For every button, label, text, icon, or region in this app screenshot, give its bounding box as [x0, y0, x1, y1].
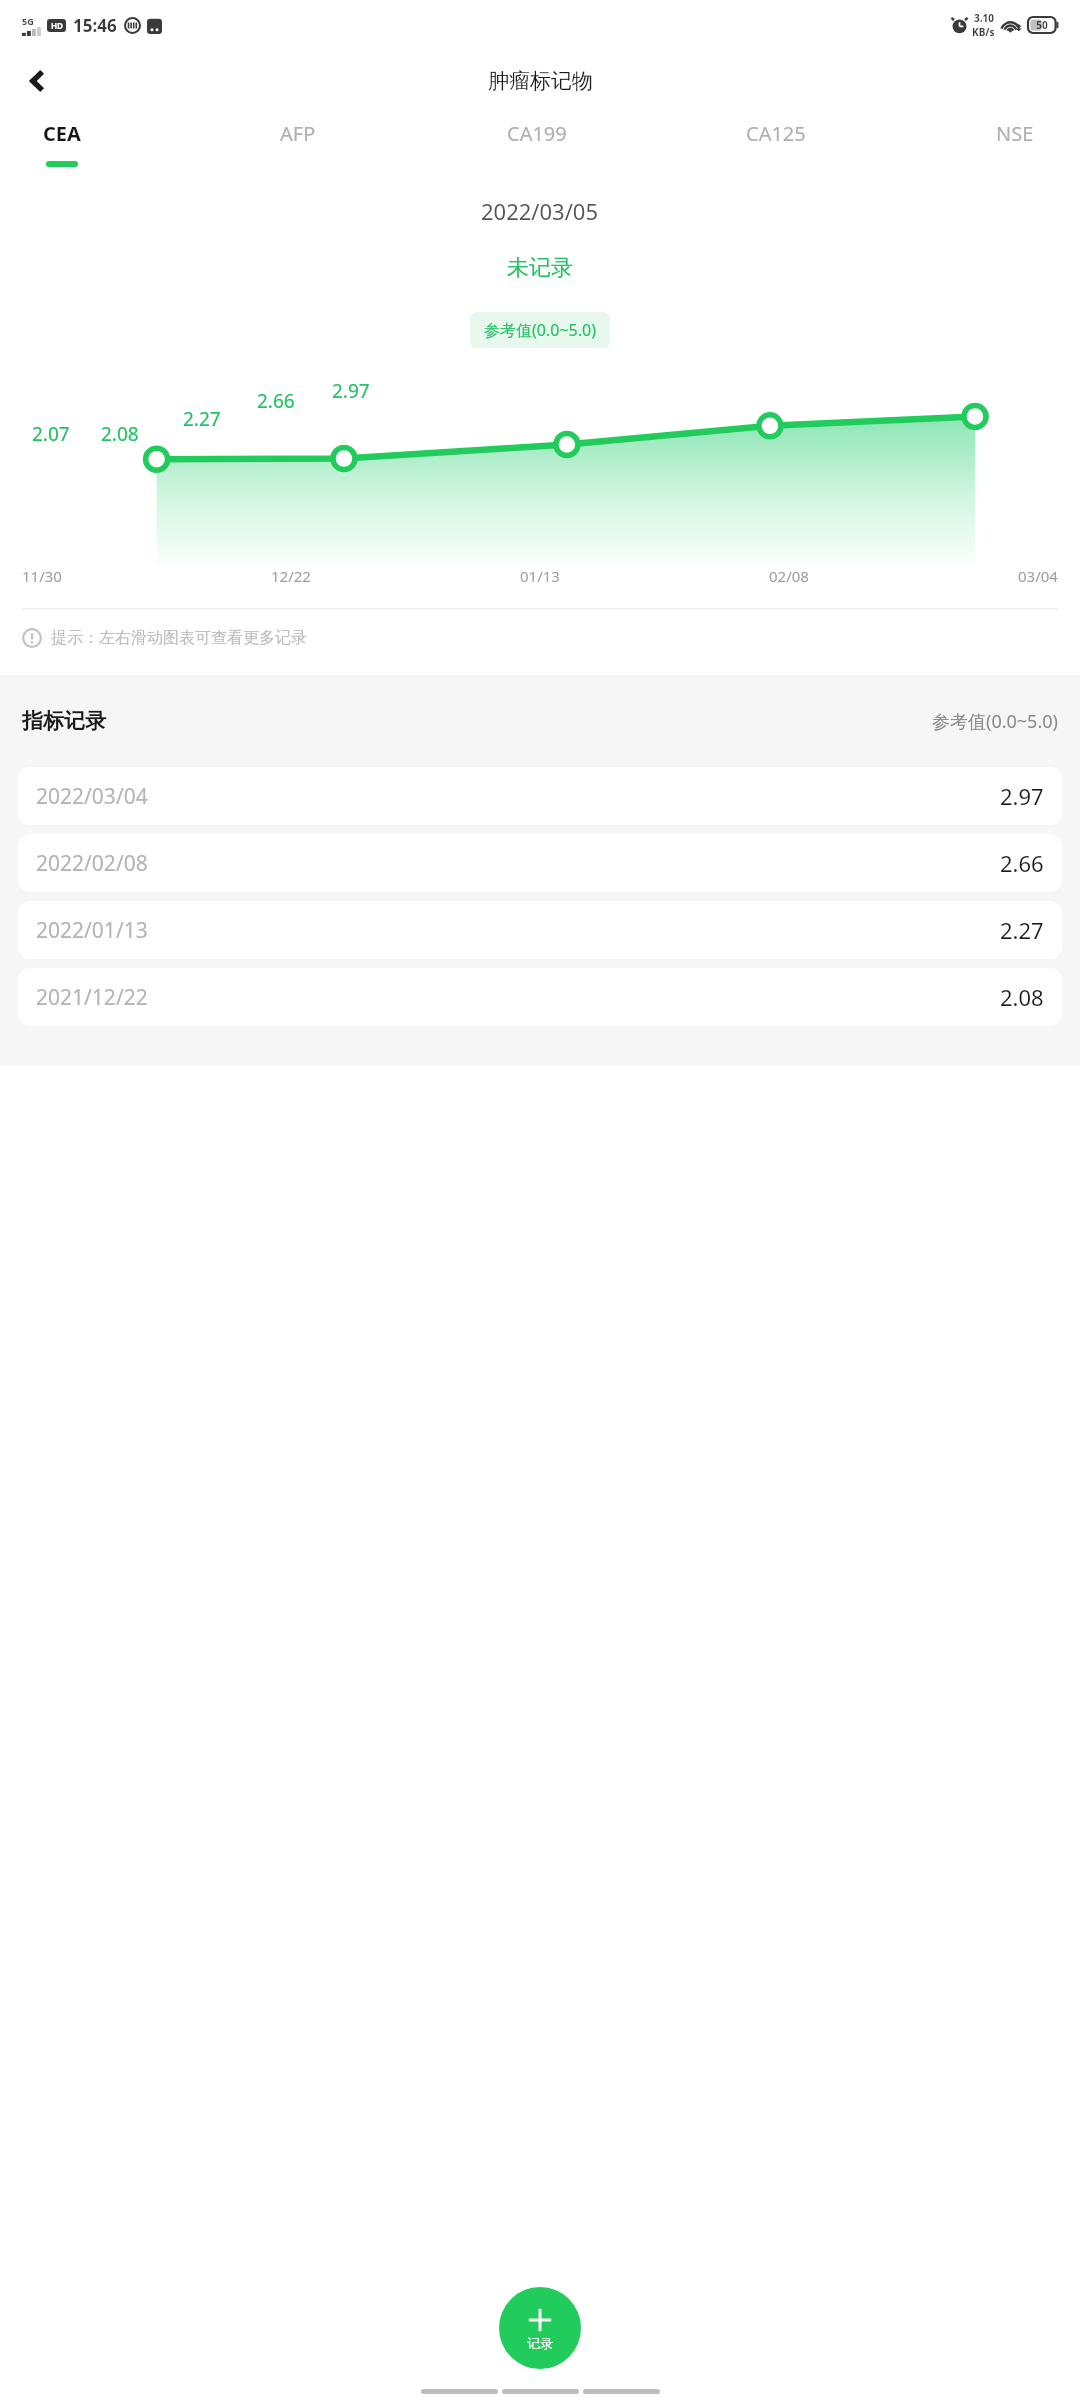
staticText: 未记录: [507, 254, 573, 282]
staticText: 2.66: [257, 388, 1080, 414]
staticText: KB/s: [972, 25, 995, 39]
staticText: NSE: [996, 120, 1034, 147]
staticText: 参考值(0.0~5.0): [932, 709, 1058, 734]
staticText: HD: [51, 20, 63, 31]
staticText: 12/22: [271, 566, 311, 586]
staticText: 2022/03/04: [36, 782, 148, 811]
staticText: 5G: [22, 15, 34, 27]
button[interactable]: CEA: [20, 112, 104, 167]
button[interactable]: NSE: [970, 112, 1060, 161]
staticText: 01/13: [520, 566, 560, 586]
staticText: AFP: [280, 120, 316, 147]
staticText: 2.07: [32, 421, 1080, 447]
staticText: 15:46: [73, 14, 117, 37]
button[interactable]: 返回: [14, 57, 62, 105]
staticText: 提示：左右滑动图表可查看更多记录: [51, 628, 307, 648]
staticText: 2.66: [1000, 848, 1044, 878]
staticText: CA125: [746, 120, 806, 147]
staticText: 2.27: [183, 406, 1080, 432]
button[interactable]: 2022/02/08: [18, 834, 1062, 892]
staticText: CEA: [43, 120, 81, 147]
button[interactable]: CA199: [492, 112, 582, 161]
staticText: 2021/12/22: [36, 983, 148, 1012]
staticText: 2.97: [1000, 781, 1044, 811]
staticText: 2022/02/08: [36, 849, 148, 878]
button[interactable]: 2022/01/13: [18, 901, 1062, 959]
button[interactable]: 2021/12/22: [18, 968, 1062, 1026]
button[interactable]: 记录: [499, 2287, 581, 2369]
staticText: 02/08: [769, 566, 809, 586]
staticText: CA199: [507, 120, 567, 147]
staticText: 参考值(0.0~5.0): [484, 319, 596, 341]
staticText: 2.97: [332, 378, 1080, 404]
staticText: 肿瘤标记物: [488, 68, 593, 94]
staticText: 指标记录: [22, 708, 106, 734]
staticText: 2.08: [1000, 982, 1044, 1012]
staticText: 3.10: [974, 11, 994, 25]
staticText: 11/30: [22, 566, 62, 586]
button[interactable]: CA125: [731, 112, 821, 161]
staticText: 50: [1028, 18, 1056, 32]
staticText: 记录: [527, 2335, 553, 2351]
button[interactable]: AFP: [253, 112, 343, 161]
staticText: 03/04: [1018, 566, 1058, 586]
staticText: 2022/01/13: [36, 916, 148, 945]
staticText: 2.27: [1000, 915, 1044, 945]
button[interactable]: 2022/03/04: [18, 767, 1062, 825]
staticText: 2.08: [101, 421, 1080, 447]
staticText: 2022/03/05: [481, 196, 599, 226]
